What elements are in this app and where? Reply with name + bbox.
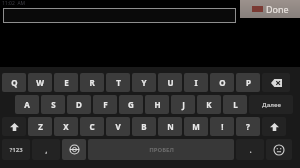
button[interactable]: J bbox=[171, 95, 195, 114]
button[interactable]: R bbox=[80, 73, 104, 92]
button[interactable]: ! bbox=[210, 117, 234, 136]
button[interactable]: X bbox=[54, 117, 78, 136]
button[interactable]: G bbox=[119, 95, 143, 114]
staticText: L bbox=[233, 99, 238, 110]
staticText: ! bbox=[221, 121, 224, 132]
button[interactable]: A bbox=[15, 95, 39, 114]
button[interactable]: . bbox=[236, 139, 264, 160]
button[interactable]: Emoji bbox=[266, 139, 292, 160]
button[interactable]: ?123 bbox=[2, 139, 30, 160]
staticText: A bbox=[24, 99, 30, 110]
staticText: G bbox=[128, 99, 134, 110]
button[interactable]: W bbox=[28, 73, 52, 92]
staticText: O bbox=[219, 77, 226, 88]
button[interactable]: U bbox=[158, 73, 182, 92]
button[interactable]: L bbox=[223, 95, 247, 114]
staticText: X bbox=[63, 121, 69, 132]
button[interactable]: Q bbox=[2, 73, 26, 92]
staticText: C bbox=[89, 121, 95, 132]
button[interactable]: I bbox=[184, 73, 208, 92]
button[interactable]: Change language bbox=[62, 139, 86, 160]
button[interactable]: M bbox=[184, 117, 208, 136]
button[interactable]: B bbox=[132, 117, 156, 136]
staticText: K bbox=[206, 99, 212, 110]
staticText: F bbox=[103, 99, 108, 110]
button[interactable]: H bbox=[145, 95, 169, 114]
staticText: N bbox=[167, 121, 174, 132]
button[interactable]: , bbox=[32, 139, 60, 160]
button[interactable]: Shift bbox=[262, 117, 286, 136]
staticText: V bbox=[115, 121, 121, 132]
staticText: T bbox=[116, 77, 121, 88]
staticText: ?123 bbox=[9, 146, 23, 154]
button[interactable]: K bbox=[197, 95, 221, 114]
staticText: S bbox=[51, 99, 56, 110]
staticText: M bbox=[192, 121, 200, 132]
button[interactable]: Backspace bbox=[262, 73, 290, 92]
button[interactable]: S bbox=[41, 95, 65, 114]
button[interactable]: Done bbox=[240, 0, 300, 18]
staticText: Z bbox=[38, 121, 43, 132]
staticText: J bbox=[182, 99, 185, 110]
staticText: 11:02 AM bbox=[2, 0, 26, 7]
staticText: Далее bbox=[262, 101, 281, 109]
staticText: E bbox=[64, 77, 69, 88]
button[interactable]: F bbox=[93, 95, 117, 114]
button[interactable]: E bbox=[54, 73, 78, 92]
button[interactable]: ? bbox=[236, 117, 260, 136]
staticText: . bbox=[249, 144, 252, 155]
staticText: I bbox=[194, 77, 198, 88]
staticText: W bbox=[36, 77, 44, 88]
staticText: ПРОБЕЛ bbox=[149, 146, 174, 154]
button[interactable]: Далее bbox=[249, 95, 293, 114]
button[interactable]: P bbox=[236, 73, 260, 92]
staticText: D bbox=[76, 99, 82, 110]
button[interactable]: D bbox=[67, 95, 91, 114]
staticText: ? bbox=[246, 121, 250, 132]
button[interactable]: O bbox=[210, 73, 234, 92]
staticText: Y bbox=[141, 77, 147, 88]
button[interactable]: ПРОБЕЛ bbox=[88, 139, 234, 160]
button[interactable]: T bbox=[106, 73, 130, 92]
button[interactable]: C bbox=[80, 117, 104, 136]
button[interactable]: Shift bbox=[2, 117, 26, 136]
button[interactable]: Z bbox=[28, 117, 52, 136]
button[interactable] bbox=[3, 8, 236, 23]
staticText: U bbox=[167, 77, 174, 88]
staticText: P bbox=[246, 77, 251, 88]
staticText: H bbox=[154, 99, 161, 110]
staticText: Done bbox=[266, 3, 289, 15]
staticText: B bbox=[141, 121, 147, 132]
button[interactable]: N bbox=[158, 117, 182, 136]
button[interactable]: V bbox=[106, 117, 130, 136]
staticText: R bbox=[89, 77, 95, 88]
button[interactable]: Y bbox=[132, 73, 156, 92]
staticText: , bbox=[45, 144, 48, 155]
staticText: Q bbox=[11, 77, 18, 88]
